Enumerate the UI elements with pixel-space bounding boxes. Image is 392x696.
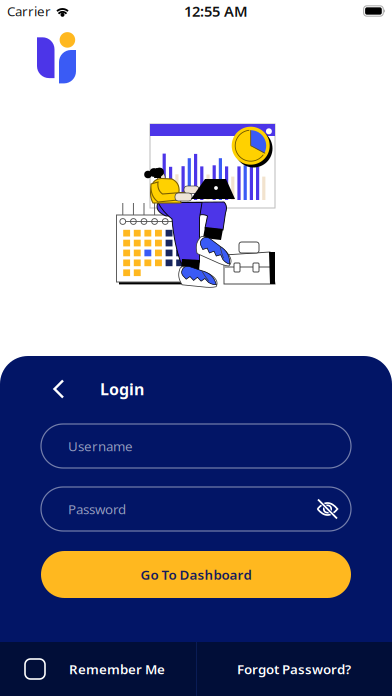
staticText: Login [100, 378, 144, 400]
staticText: 12:55 AM [184, 1, 248, 21]
button[interactable]: Go To Dashboard [41, 551, 351, 598]
staticText: Carrier [7, 2, 51, 20]
staticText: Password [68, 500, 126, 518]
staticText: Go To Dashboard [140, 566, 251, 583]
staticText: Username [68, 437, 133, 455]
staticText: Forgot Password? [237, 660, 351, 678]
button[interactable]: Remember Me [0, 642, 196, 696]
button[interactable]: Show password [316, 498, 339, 519]
button[interactable]: Forgot Password? [196, 642, 392, 696]
button[interactable]: Back [44, 374, 74, 404]
staticText: Remember Me [69, 660, 165, 678]
